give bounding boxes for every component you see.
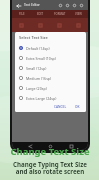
staticText: Medium (16sp) — [26, 76, 52, 81]
button[interactable]: Zoom — [71, 2, 78, 9]
staticText: Extra Large (24sp) — [26, 96, 57, 101]
button[interactable]: VIEW — [69, 10, 88, 18]
staticText: Text Editor — [24, 3, 40, 7]
button[interactable]: Tool 4 — [69, 18, 88, 32]
staticText: Default (14sp) — [26, 46, 50, 51]
button[interactable]: Medium (16sp) — [19, 73, 83, 83]
button[interactable]: OK — [72, 104, 83, 110]
button[interactable]: Extra Large (24sp) — [19, 93, 83, 103]
button[interactable]: Tool 2 — [31, 18, 50, 32]
staticText: FILE — [19, 12, 25, 16]
button[interactable]: CANCEL — [51, 104, 70, 110]
staticText: OK — [75, 105, 80, 109]
button[interactable]: Large (20sp) — [19, 83, 83, 93]
staticText: Extra Small (10sp) — [26, 56, 56, 61]
staticText: Select Text Size — [19, 35, 48, 40]
staticText: FORMAT — [54, 12, 66, 16]
staticText: CANCEL — [54, 105, 67, 109]
button[interactable]: Default (14sp) — [19, 43, 83, 53]
button[interactable]: Home — [47, 143, 53, 149]
button[interactable]: FORMAT — [50, 10, 69, 18]
button[interactable]: Undo — [57, 2, 64, 9]
button[interactable]: Back — [15, 2, 22, 9]
staticText: Large (20sp) — [26, 86, 47, 91]
staticText: Change Text Size — [10, 145, 90, 158]
staticText: VIEW — [75, 12, 82, 16]
button[interactable]: Tool 3 — [50, 18, 69, 32]
staticText: EDIT — [37, 12, 44, 16]
button[interactable]: Tool 1 — [12, 18, 31, 32]
button[interactable]: FILE — [12, 10, 31, 18]
button[interactable]: Small (12sp) — [19, 63, 83, 73]
staticText: Change Typing Text Size and also rotate … — [13, 160, 87, 176]
button[interactable]: EDIT — [31, 10, 50, 18]
button[interactable]: Back — [27, 143, 33, 149]
button[interactable]: More — [78, 2, 85, 9]
staticText: Small (12sp) — [26, 66, 47, 71]
button[interactable]: Extra Small (10sp) — [19, 53, 83, 63]
button[interactable]: Redo — [64, 2, 71, 9]
button[interactable]: Recents — [68, 143, 74, 149]
